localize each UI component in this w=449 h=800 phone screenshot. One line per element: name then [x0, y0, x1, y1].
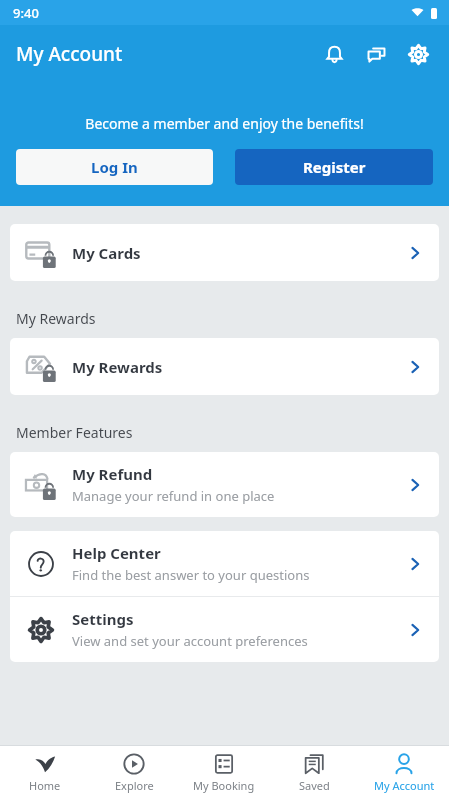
staticText: My Refund [72, 464, 153, 484]
staticText: Settings [72, 609, 134, 629]
button[interactable]: Messages [355, 33, 397, 75]
button[interactable]: Explore [89, 746, 179, 800]
staticText: My Cards [72, 243, 141, 263]
staticText: Register [303, 157, 366, 177]
staticText: Log In [91, 157, 138, 177]
staticText: Become a member and enjoy the benefits! [0, 114, 449, 133]
button[interactable]: My Rewards [10, 338, 439, 395]
staticText: View and set your account preferences [72, 632, 308, 650]
button[interactable]: My Cards [10, 224, 439, 281]
button[interactable]: Settings [10, 597, 439, 662]
button[interactable]: Log In [16, 149, 213, 185]
button[interactable]: Notifications [313, 33, 355, 75]
staticText: My Account [16, 41, 123, 67]
button[interactable]: My Refund [10, 452, 439, 517]
button[interactable]: Settings [397, 33, 439, 75]
button[interactable]: Help Center [10, 531, 439, 596]
button[interactable]: Register [235, 149, 433, 185]
button[interactable]: Saved [269, 746, 359, 800]
staticText: Saved [299, 778, 330, 793]
button[interactable]: My Booking [179, 746, 269, 800]
staticText: My Booking [193, 778, 255, 793]
button[interactable]: Home [0, 746, 89, 800]
staticText: My Rewards [72, 357, 163, 377]
staticText: Home [29, 778, 61, 793]
staticText: Manage your refund in one place [72, 487, 275, 505]
staticText: 9:40 [13, 4, 39, 22]
button[interactable]: My Account [359, 746, 449, 800]
staticText: Explore [115, 778, 154, 793]
staticText: Find the best answer to your questions [72, 566, 310, 584]
staticText: Member Features [16, 423, 133, 442]
staticText: Help Center [72, 543, 161, 563]
staticText: My Account [374, 778, 435, 793]
staticText: My Rewards [16, 309, 96, 328]
